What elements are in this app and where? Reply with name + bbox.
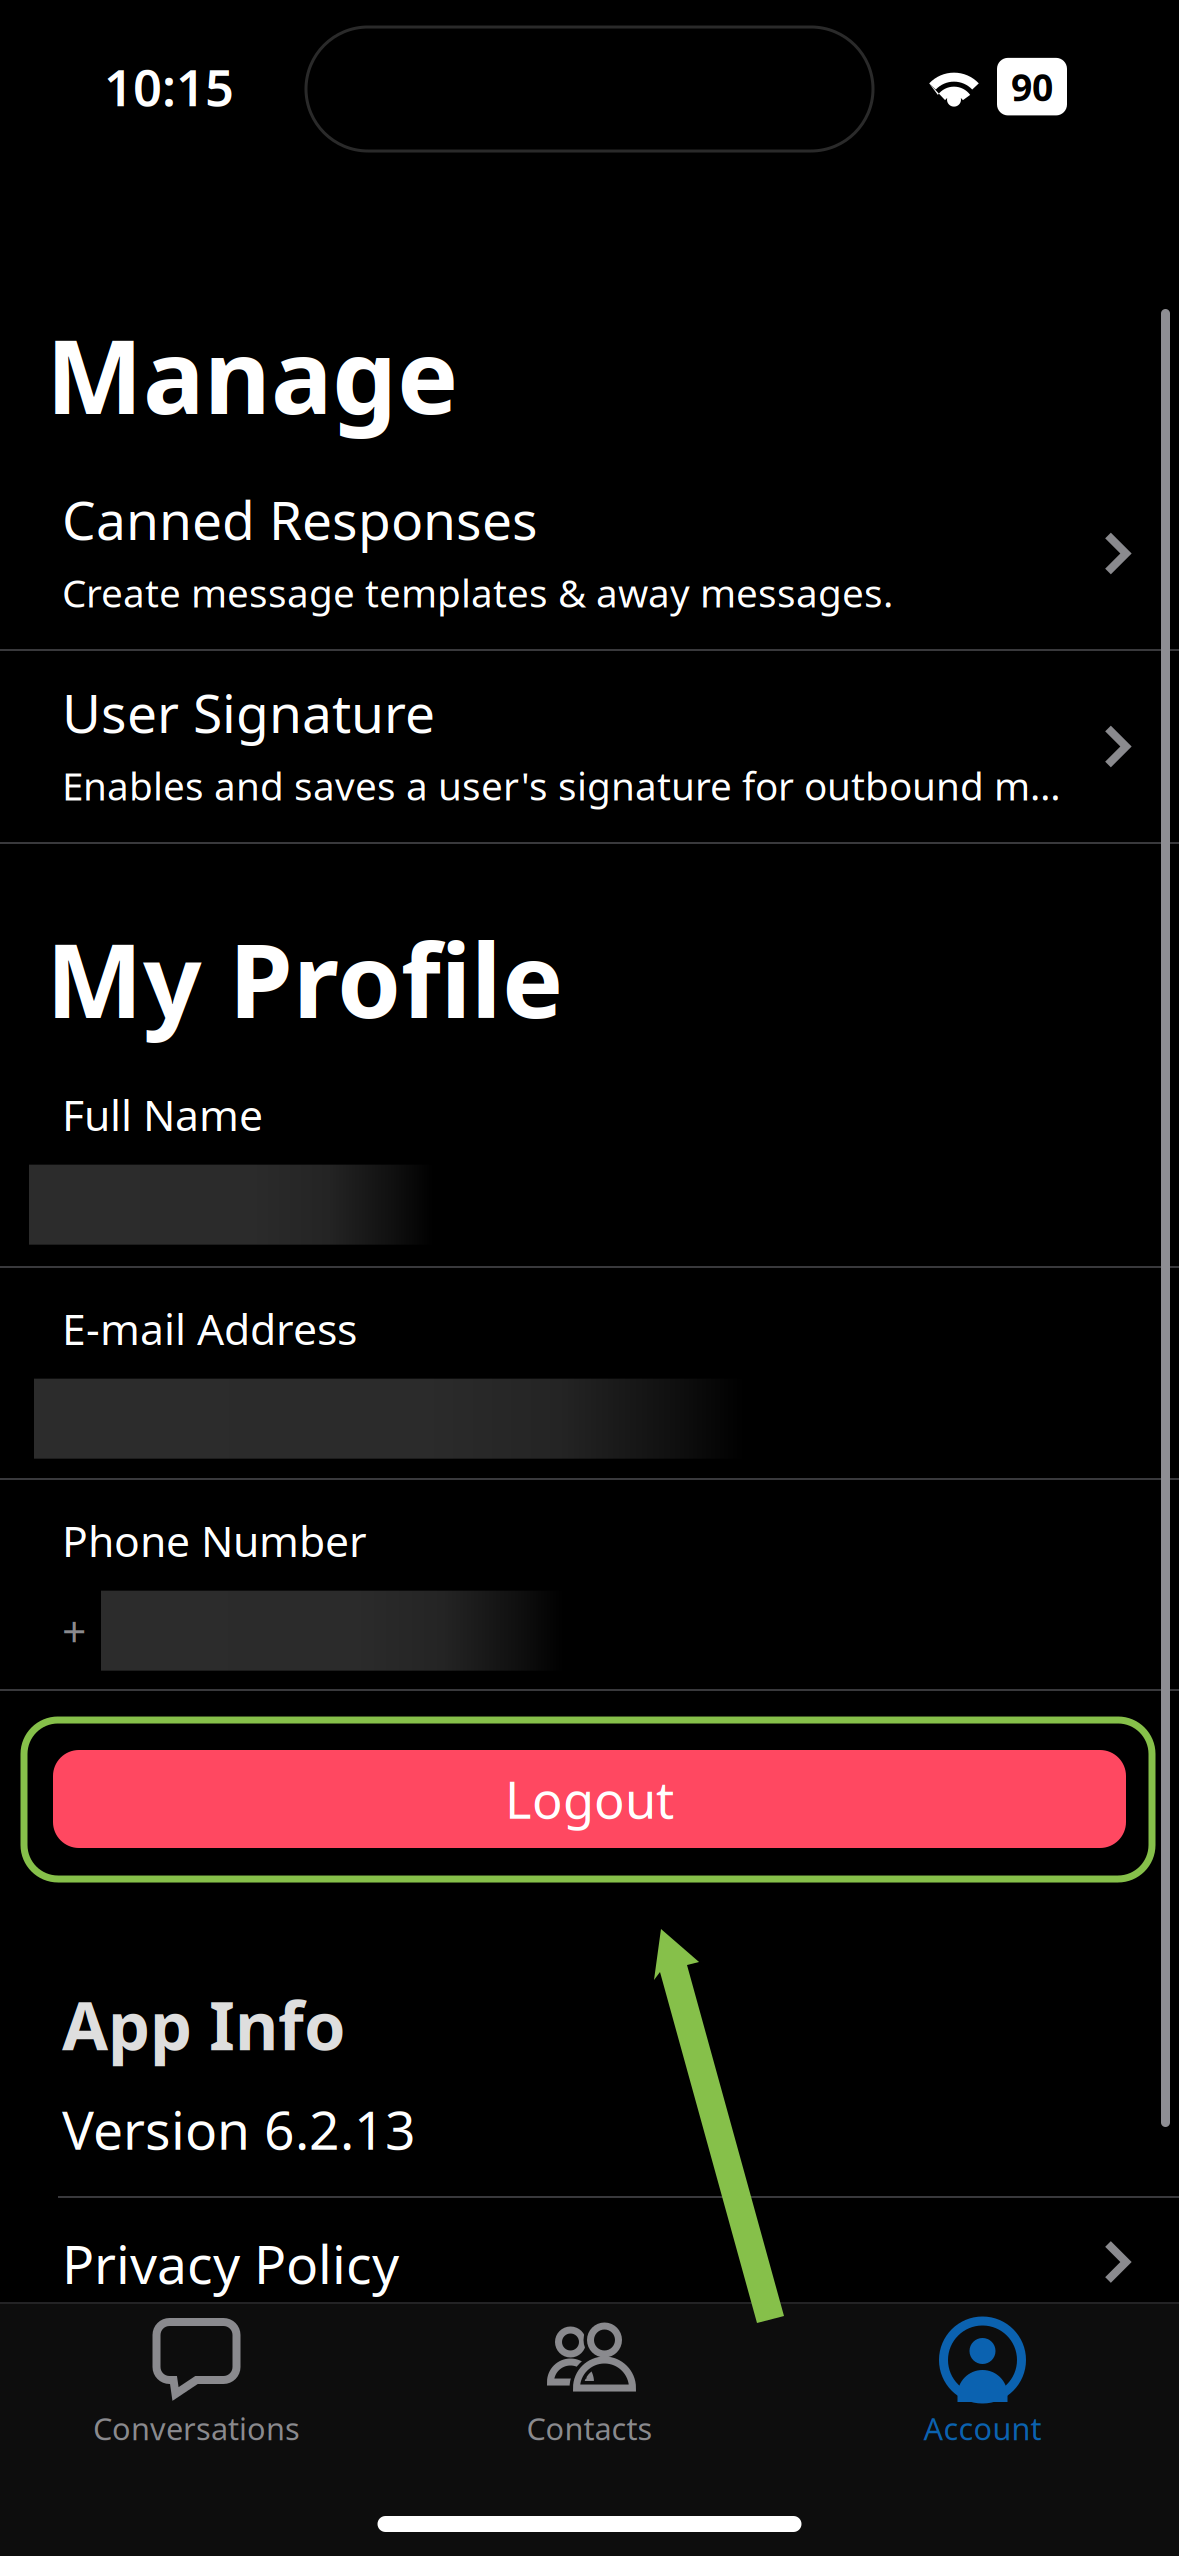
staticText: App Info [62, 1980, 346, 2068]
staticText: E-mail Address [62, 1300, 357, 1357]
staticText: Manage [46, 306, 458, 442]
staticText: + [62, 1602, 86, 1659]
button[interactable]: Contacts [393, 2304, 786, 2480]
staticText: Account [923, 2408, 1041, 2449]
staticText: Full Name [62, 1086, 263, 1143]
button[interactable]: Conversations [0, 2304, 393, 2480]
button[interactable]: Account [786, 2304, 1179, 2480]
staticText: Canned Responses [62, 484, 538, 555]
staticText: Create message templates & away messages… [62, 567, 893, 618]
staticText: Contacts [526, 2408, 652, 2449]
button[interactable]: Privacy Policy [0, 2198, 1179, 2302]
staticText: Phone Number [62, 1512, 367, 1569]
staticText: Enables and saves a user's signature for… [62, 760, 1061, 811]
staticText: Logout [505, 1765, 674, 1833]
staticText: User Signature [62, 677, 435, 748]
button[interactable]: Canned Responses [0, 458, 1179, 649]
staticText: My Profile [46, 910, 563, 1046]
staticText: Privacy Policy [62, 2228, 399, 2299]
staticText: Conversations [93, 2408, 300, 2449]
staticText: Version 6.2.13 [62, 2093, 416, 2164]
button[interactable]: Logout [0, 1691, 1179, 1848]
staticText: 10:15 [104, 53, 234, 120]
button[interactable]: User Signature [0, 651, 1179, 842]
staticText: 90 [1011, 62, 1053, 111]
